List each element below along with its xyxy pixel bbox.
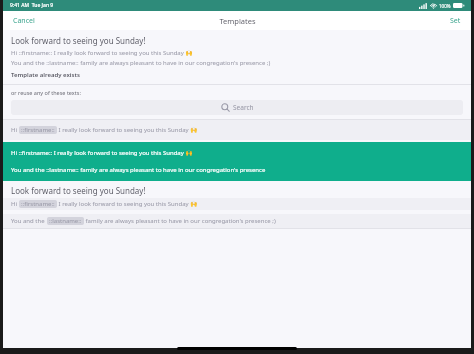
button[interactable]: You and the [3,214,471,228]
staticText: I really look forward to seeing you this… [57,200,198,208]
button[interactable]: Cancel [9,13,39,29]
staticText: Templates [219,16,256,26]
button[interactable]: Set [446,13,465,29]
staticText: or reuse any of these texts: [11,89,81,96]
staticText: Hi ::firstname:: I really look forward t… [11,49,193,57]
staticText: Hi ::firstname:: I really look forward t… [11,149,193,157]
button[interactable]: Search [11,100,463,115]
staticText: 100% [439,3,451,9]
button[interactable]: Hi [3,120,471,140]
staticText: Look forward to seeing you Sunday! [11,35,146,46]
staticText: ::firstname:: [21,200,55,208]
staticText: Template already exists [11,71,80,79]
staticText: Hi [11,126,19,134]
staticText: Hi [11,200,19,208]
staticText: Cancel [13,16,35,26]
staticText: I really look forward to seeing you this… [57,126,198,134]
staticText: You and the [11,217,47,225]
staticText: family are always pleasant to have in ou… [84,217,276,225]
staticText: ::firstname:: [21,126,55,134]
staticText: You and the ::lastname:: family are alwa… [11,59,271,67]
button[interactable]: Hi [3,198,471,210]
staticText: Set [450,16,461,26]
staticText: Look forward to seeing you Sunday! [11,185,146,196]
staticText: 9:41 AM Tue Jan 9 [10,2,54,9]
staticText: Search [233,103,254,112]
staticText: ::lastname:: [49,217,82,225]
button[interactable]: Hi ::firstname:: I really look forward t… [3,142,471,181]
staticText: You and the ::lastname:: family are alwa… [11,166,266,174]
